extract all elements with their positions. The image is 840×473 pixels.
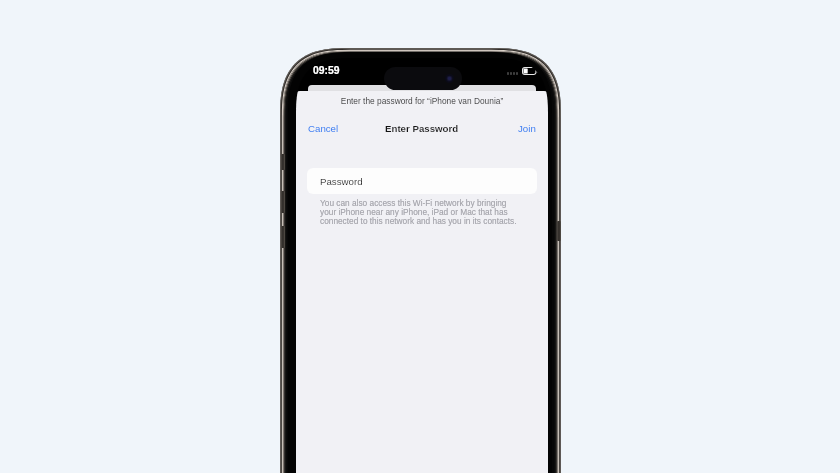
staticText: 09:59 [313, 65, 340, 77]
staticText: Password [320, 176, 363, 187]
staticText: Cancel [308, 123, 339, 134]
staticText: You can also access this Wi-Fi network b… [320, 198, 522, 225]
staticText: Enter the password for “iPhone van Douni… [296, 96, 548, 105]
button[interactable]: Cancel [296, 120, 349, 137]
staticText: Join [518, 123, 536, 134]
button[interactable]: Password [307, 168, 537, 194]
button[interactable]: Join [508, 120, 548, 137]
staticText: Enter Password [385, 123, 459, 134]
